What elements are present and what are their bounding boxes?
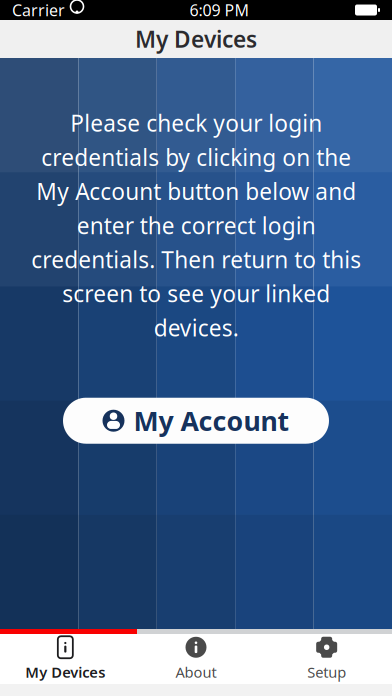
staticText: Carrier [12,0,65,21]
button[interactable]: My Account [63,398,329,444]
staticText: 6:09 PM [189,0,249,21]
staticText: Please check your login credentials by c… [31,108,361,343]
staticText: About [175,662,216,682]
staticText: My Devices [135,24,257,54]
staticText: My Devices [25,662,105,682]
staticText: My Account [133,403,289,438]
button[interactable]: Setup [261,630,392,688]
button[interactable]: My Devices [0,630,131,688]
staticText: Setup [307,662,346,682]
button[interactable]: About [131,630,261,688]
